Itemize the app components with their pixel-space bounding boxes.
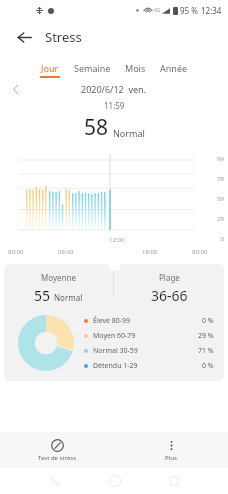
staticText: 4G (154, 7, 161, 14)
staticText: Moyenne (41, 272, 76, 283)
staticText: 0 % (202, 361, 214, 371)
staticText: 12:00 (109, 236, 125, 244)
staticText: Test de stress (38, 454, 77, 462)
staticText: Élevé 80-99 (93, 316, 202, 326)
staticText: 99 (210, 155, 224, 163)
staticText: 0 % (202, 316, 214, 326)
staticText: 95 % (180, 5, 198, 16)
staticText: 29 % (198, 331, 214, 341)
staticText: 0 (210, 235, 224, 243)
staticText: Jour (41, 62, 59, 74)
staticText: Normal (54, 292, 83, 303)
button[interactable]: Semaine (67, 62, 118, 78)
button[interactable]: Plus (114, 432, 228, 468)
button[interactable]: Previous day (8, 81, 24, 97)
staticText: Année (160, 62, 188, 74)
button[interactable]: Jour (33, 62, 67, 78)
staticText: Plus (165, 454, 177, 462)
staticText: Normal 30-59 (93, 346, 198, 356)
staticText: 29 (210, 215, 224, 223)
staticText: Plage (159, 272, 180, 283)
staticText: 12:34 (201, 5, 222, 16)
staticText: 18:00 (142, 248, 158, 256)
staticText: Moyen 60-79 (93, 331, 198, 341)
staticText: 2020/6/12 ven. (81, 83, 147, 95)
staticText: Semaine (74, 62, 111, 74)
staticText: 11:59 (104, 100, 125, 111)
staticText: 55 (34, 286, 51, 305)
staticText: Détendu 1-29 (93, 361, 202, 371)
staticText: 06:00 (58, 248, 74, 256)
staticText: Stress (45, 28, 82, 46)
staticText: 00:00 (192, 248, 208, 256)
staticText: Mois (125, 62, 146, 74)
button[interactable]: Mois (118, 62, 153, 78)
staticText: 59 (210, 195, 224, 203)
staticText: Normal (113, 127, 145, 139)
button[interactable]: Année (153, 62, 195, 78)
button[interactable]: Test de stress (0, 432, 114, 468)
staticText: 79 (210, 175, 224, 183)
staticText: 36-66 (151, 286, 188, 305)
staticText: 58 (84, 113, 109, 142)
button[interactable]: Back (12, 25, 36, 49)
staticText: 00:00 (8, 248, 24, 256)
staticText: 71 % (198, 346, 214, 356)
